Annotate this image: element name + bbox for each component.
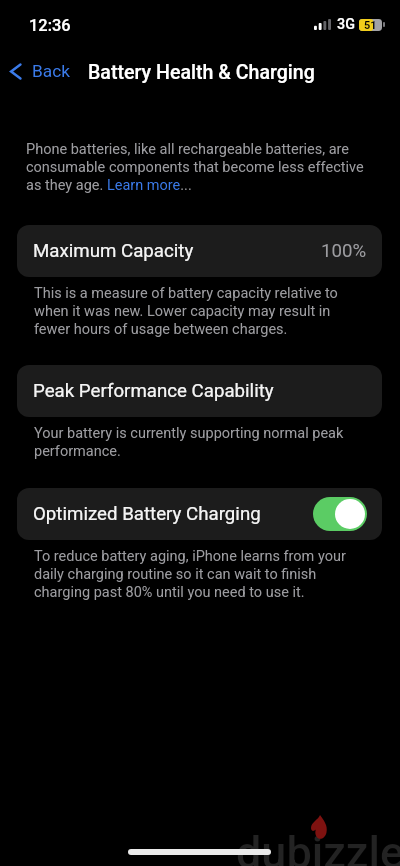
staticText: 12:36 [29, 16, 71, 35]
button[interactable]: Peak Performance Capability [17, 365, 382, 417]
staticText: 51 [364, 19, 377, 31]
staticText: This is a measure of battery capacity re… [34, 283, 366, 337]
button[interactable]: Optimized Battery Charging [17, 488, 382, 540]
staticText: Phone batteries, like all rechargeable b… [26, 139, 374, 193]
button[interactable]: Back [4, 56, 79, 86]
staticText: Peak Performance Capability [33, 380, 274, 402]
staticText: 3G [337, 16, 355, 33]
staticText: Maximum Capacity [33, 240, 194, 262]
button[interactable]: Maximum Capacity [17, 225, 382, 277]
staticText: Back [32, 61, 71, 81]
staticText: To reduce battery aging, iPhone learns f… [34, 546, 366, 600]
staticText: Optimized Battery Charging [33, 503, 261, 525]
staticText: Battery Health & Charging [88, 61, 315, 84]
staticText: Your battery is currently supporting nor… [34, 423, 366, 459]
staticText: 100% [321, 240, 367, 262]
button[interactable]: Optimized Battery Charging toggle [313, 497, 367, 531]
staticText: dubizzle [236, 826, 400, 866]
